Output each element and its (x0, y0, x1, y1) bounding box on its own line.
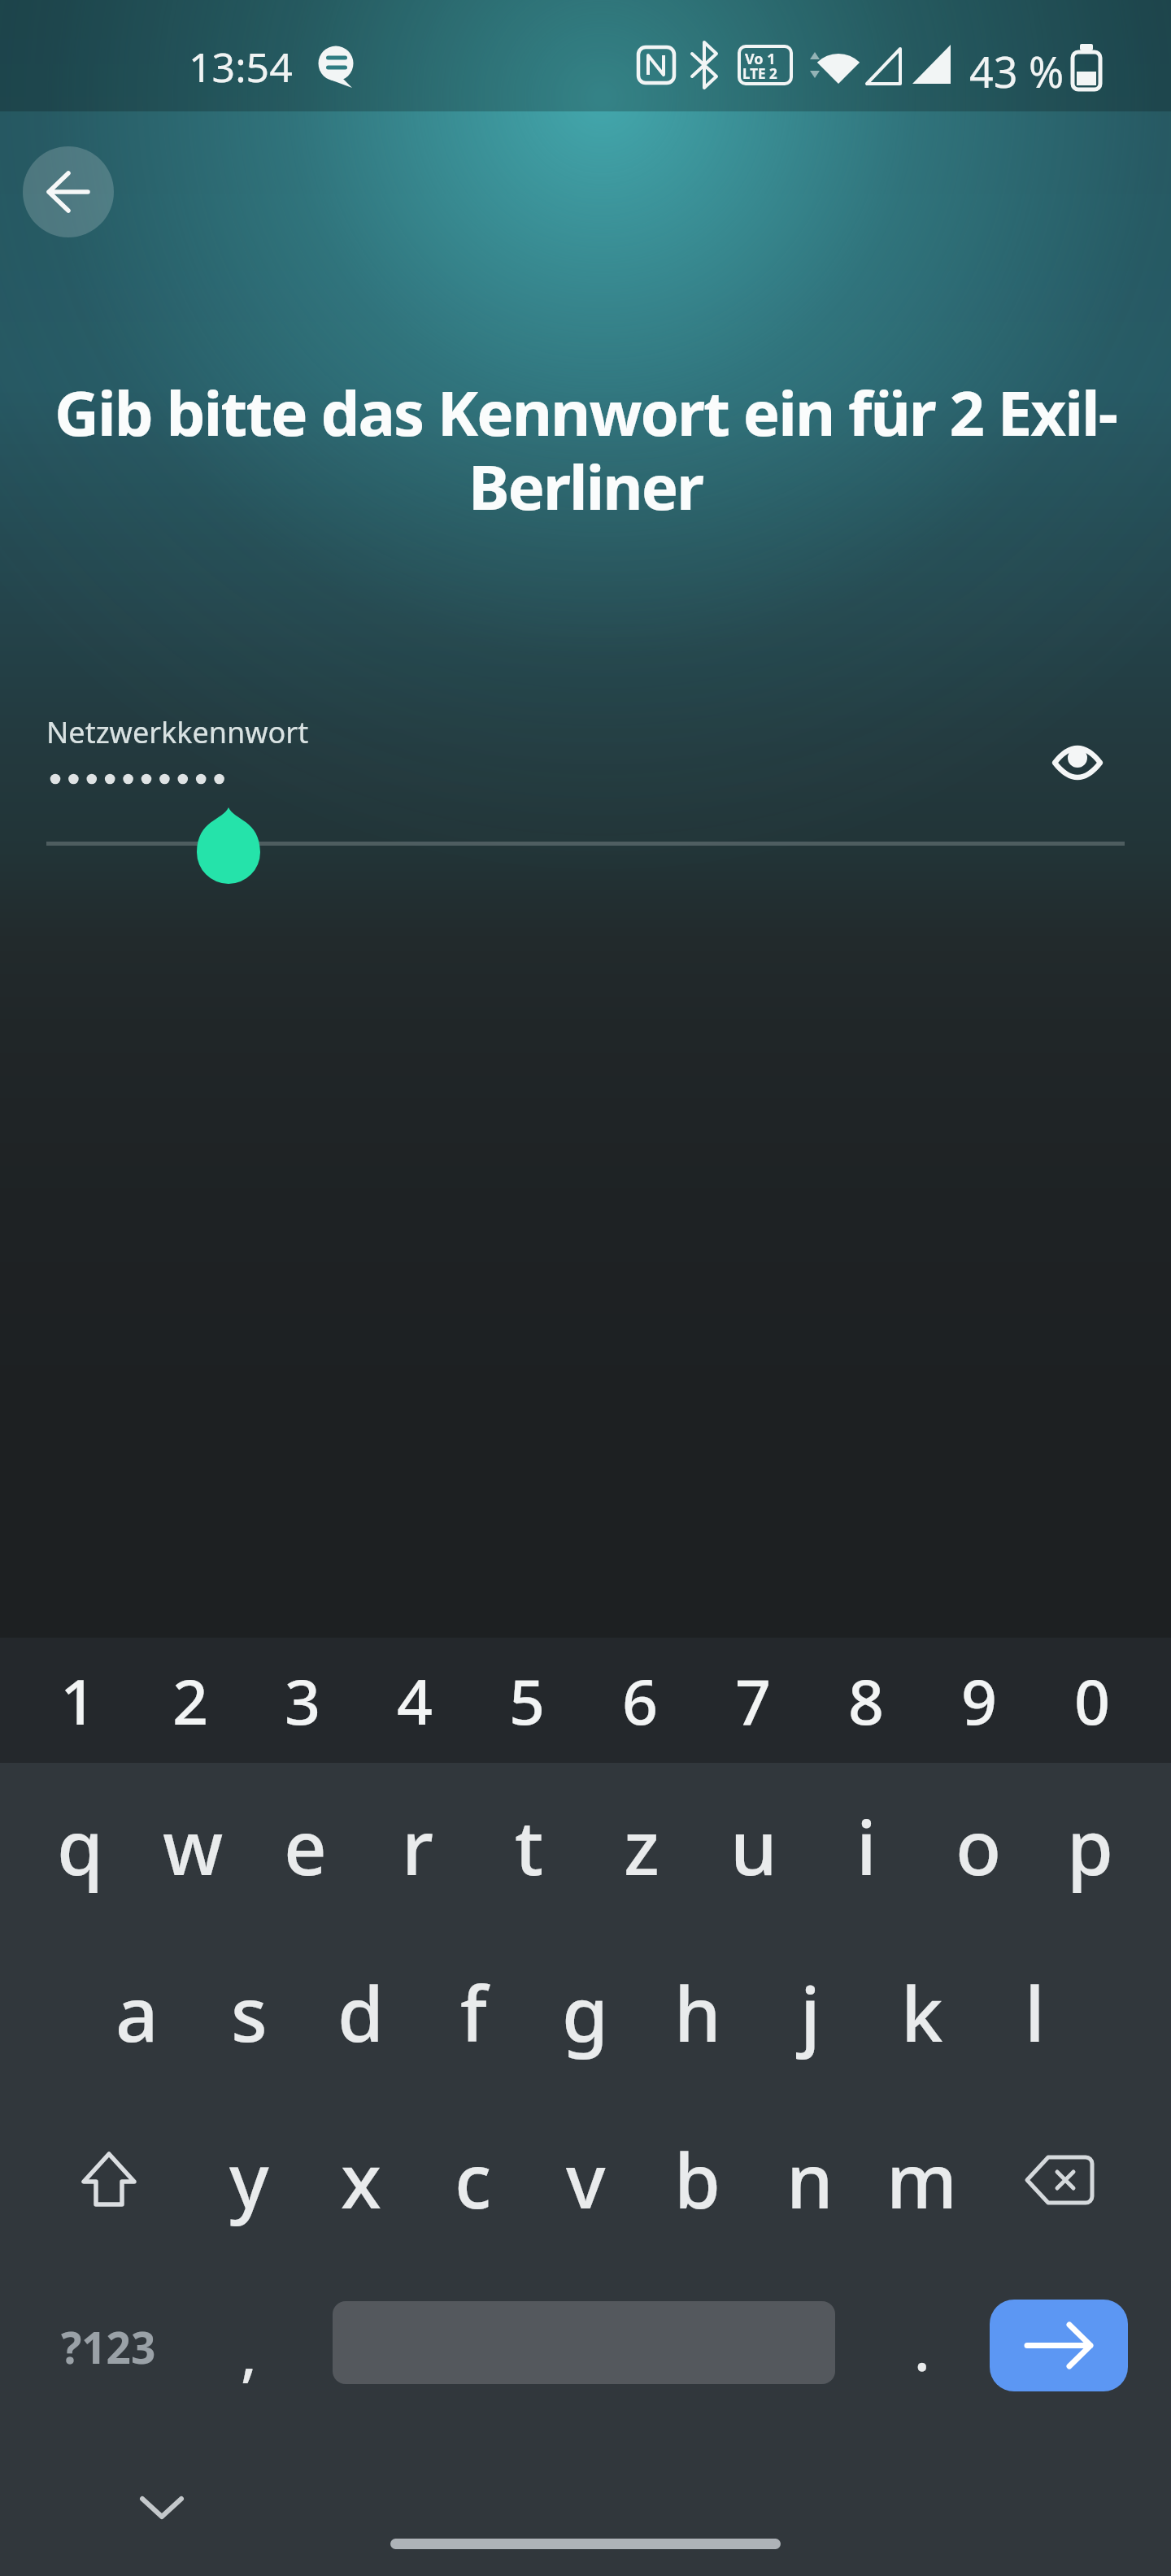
button[interactable]: . (866, 2263, 978, 2430)
button[interactable]: b (642, 2096, 754, 2263)
button[interactable] (23, 146, 114, 237)
button[interactable]: 7 (697, 1638, 810, 1763)
button[interactable]: f (417, 1930, 529, 2096)
staticText: 13:54 (189, 39, 293, 94)
button[interactable] (24, 2096, 193, 2263)
staticText: LTE 2 (742, 64, 777, 83)
button[interactable]: d (305, 1930, 417, 2096)
button[interactable]: l (978, 1930, 1090, 2096)
staticText: v (566, 2129, 606, 2230)
button[interactable]: e (249, 1763, 361, 1930)
staticText: k (901, 1962, 943, 2064)
staticText: Vo 1 (745, 49, 776, 69)
button[interactable]: 9 (923, 1638, 1036, 1763)
button[interactable]: o (922, 1763, 1034, 1930)
staticText: c (455, 2129, 492, 2230)
button[interactable]: j (754, 1930, 866, 2096)
staticText: b (674, 2129, 721, 2230)
button[interactable] (978, 2096, 1147, 2263)
staticText: z (624, 1795, 660, 1897)
button[interactable] (990, 2300, 1128, 2391)
staticText: s (231, 1962, 268, 2064)
staticText: j (800, 1962, 821, 2064)
button[interactable]: a (81, 1930, 193, 2096)
button[interactable]: 3 (246, 1638, 359, 1763)
button[interactable]: v (529, 2096, 642, 2263)
button[interactable]: 0 (1036, 1638, 1149, 1763)
button[interactable]: 5 (471, 1638, 584, 1763)
button[interactable]: 4 (359, 1638, 471, 1763)
staticText: , (241, 2313, 257, 2393)
staticText: i (856, 1795, 877, 1897)
staticText: . (914, 2308, 930, 2388)
staticText: 1 (60, 1658, 97, 1743)
staticText: 8 (848, 1658, 885, 1743)
button[interactable]: 2 (134, 1638, 246, 1763)
staticText: q (57, 1795, 104, 1897)
button[interactable]: , (193, 2263, 305, 2430)
staticText: Gib bitte das Kennwort ein für 2 Exil- B… (0, 370, 1171, 528)
button[interactable]: t (473, 1763, 585, 1930)
staticText: g (562, 1962, 609, 2064)
staticText: Netzwerkkennwort (46, 712, 309, 752)
button[interactable]: p (1034, 1763, 1147, 1930)
staticText: d (337, 1962, 385, 2064)
staticText: x (341, 2129, 381, 2230)
staticText: l (1025, 1962, 1045, 2064)
staticText: h (674, 1962, 721, 2064)
staticText: t (515, 1795, 544, 1897)
staticText: 4 (397, 1658, 433, 1743)
button[interactable]: x (305, 2096, 417, 2263)
button[interactable]: z (585, 1763, 698, 1930)
staticText: p (1067, 1795, 1114, 1897)
staticText: r (402, 1795, 433, 1897)
staticText: 3 (285, 1658, 321, 1743)
staticText: 5 (509, 1658, 546, 1743)
staticText: u (730, 1795, 777, 1897)
staticText: 9 (961, 1658, 998, 1743)
button[interactable]: s (193, 1930, 305, 2096)
button[interactable]: ?123 (24, 2263, 193, 2430)
staticText: 0 (1074, 1658, 1111, 1743)
button[interactable]: m (866, 2096, 978, 2263)
button[interactable] (1048, 733, 1107, 791)
staticText: 7 (735, 1658, 772, 1743)
staticText: m (886, 2129, 958, 2230)
button[interactable]: c (417, 2096, 529, 2263)
button[interactable]: 8 (810, 1638, 923, 1763)
staticText: w (163, 1795, 224, 1897)
button[interactable]: q (24, 1763, 137, 1930)
button[interactable]: h (642, 1930, 754, 2096)
button[interactable]: i (810, 1763, 922, 1930)
button[interactable]: w (137, 1763, 249, 1930)
button[interactable]: 6 (584, 1638, 697, 1763)
staticText: 43 % (969, 42, 1064, 100)
staticText: 6 (622, 1658, 659, 1743)
staticText: y (229, 2129, 269, 2230)
button[interactable]: n (754, 2096, 866, 2263)
button[interactable]: y (193, 2096, 305, 2263)
button[interactable]: 1 (22, 1638, 134, 1763)
button[interactable] (333, 2301, 835, 2384)
staticText: a (115, 1962, 159, 2064)
staticText: n (786, 2129, 834, 2230)
staticText: ?123 (61, 2317, 156, 2376)
staticText: o (956, 1795, 1002, 1897)
staticText: f (460, 1962, 487, 2064)
button[interactable]: u (698, 1763, 810, 1930)
button[interactable]: r (361, 1763, 473, 1930)
button[interactable]: k (866, 1930, 978, 2096)
button[interactable]: g (529, 1930, 642, 2096)
staticText: e (284, 1795, 327, 1897)
button[interactable] (133, 2478, 191, 2537)
staticText: 2 (172, 1658, 209, 1743)
